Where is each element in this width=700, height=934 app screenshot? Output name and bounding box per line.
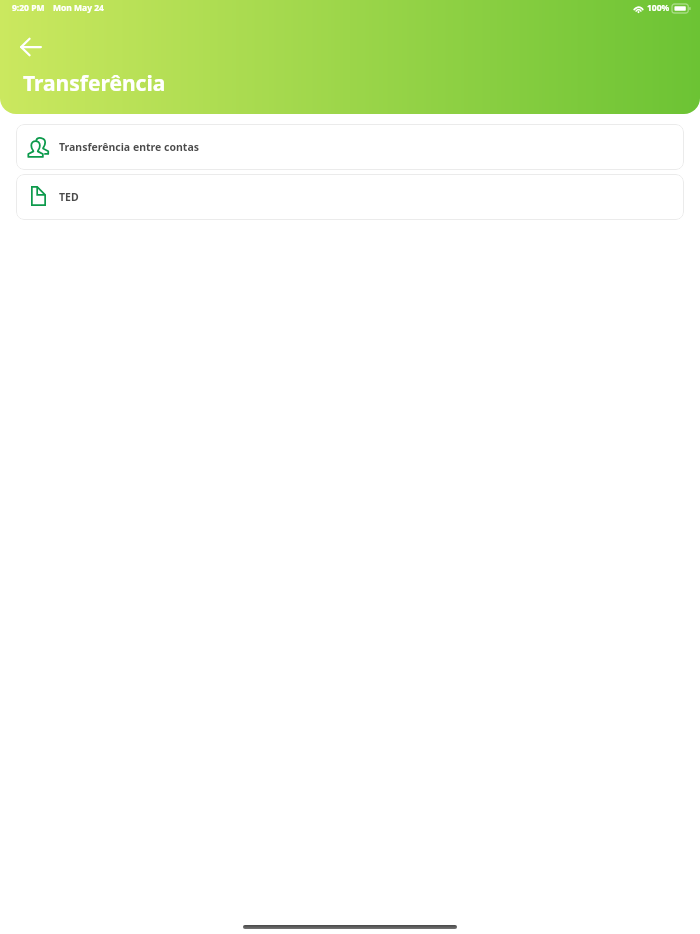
button[interactable]: Back: [16, 32, 46, 62]
staticText: TED: [59, 190, 79, 204]
staticText: 100%: [647, 2, 670, 14]
staticText: Mon May 24: [53, 2, 104, 14]
button[interactable]: Transferência entre contas: [16, 124, 684, 170]
staticText: Transferência: [23, 69, 166, 98]
button[interactable]: TED: [16, 174, 684, 220]
staticText: Transferência entre contas: [59, 140, 199, 154]
staticText: 9:20 PM: [12, 2, 45, 14]
